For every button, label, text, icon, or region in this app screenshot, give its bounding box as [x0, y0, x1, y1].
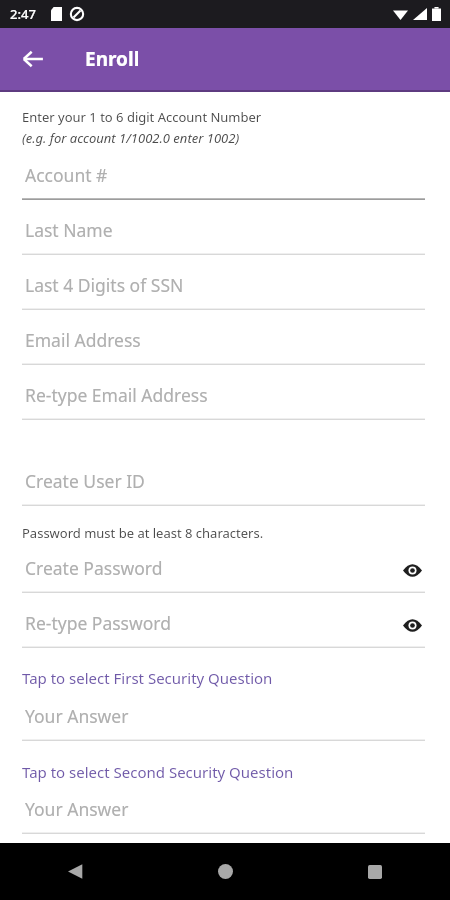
button[interactable]: Your Answer — [22, 703, 425, 741]
button[interactable]: Last 4 Digits of SSN — [22, 272, 425, 310]
staticText: Email Address — [25, 328, 141, 352]
staticText: (e.g. for account 1/1002.0 enter 1002) — [22, 129, 240, 147]
staticText: Enter your 1 to 6 digit Account Number — [22, 108, 262, 126]
staticText: Re-type Email Address — [25, 383, 208, 407]
staticText: 2:47 — [10, 5, 36, 23]
button[interactable]: Recent apps — [300, 843, 450, 900]
staticText: Enroll — [85, 46, 140, 72]
staticText: Create User ID — [25, 469, 145, 493]
staticText: Tap to select Second Security Question — [22, 762, 294, 782]
button[interactable]: Last Name — [22, 217, 425, 255]
staticText: Create Password — [25, 556, 163, 580]
button[interactable]: Tap to select Second Security Question — [16, 760, 300, 784]
staticText: Password must be at least 8 characters. — [22, 524, 264, 542]
button[interactable]: Re-type Email Address — [22, 382, 425, 420]
staticText: Your Answer — [25, 797, 129, 821]
button[interactable]: Home — [150, 843, 300, 900]
button[interactable]: Tap to select First Security Question — [16, 666, 279, 690]
staticText: Last 4 Digits of SSN — [25, 273, 184, 297]
staticText: Your Answer — [25, 704, 129, 728]
button[interactable]: Re-type Password — [22, 610, 425, 648]
button[interactable]: Create Password — [22, 555, 425, 593]
button[interactable]: Your Answer — [22, 796, 425, 834]
staticText: Tap to select First Security Question — [22, 668, 273, 688]
staticText: Last Name — [25, 218, 113, 242]
button[interactable]: Show password — [399, 612, 425, 638]
button[interactable]: Create User ID — [22, 468, 425, 506]
staticText: Re-type Password — [25, 611, 171, 635]
button[interactable]: Back — [12, 38, 54, 80]
button[interactable]: Back — [0, 843, 150, 900]
button[interactable]: Account # — [22, 162, 425, 200]
staticText: Account # — [25, 163, 108, 187]
button[interactable]: Email Address — [22, 327, 425, 365]
button[interactable]: Show password — [399, 557, 425, 583]
